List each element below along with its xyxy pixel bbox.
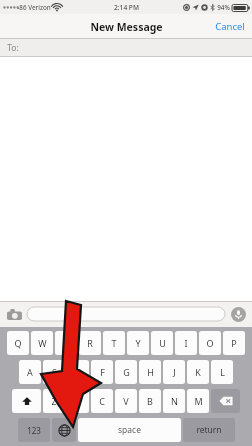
staticText: O xyxy=(206,337,214,349)
staticText: C xyxy=(99,395,105,407)
staticText: return xyxy=(196,424,222,436)
button[interactable]: Shift xyxy=(12,389,41,413)
staticText: N xyxy=(171,395,178,407)
button[interactable]: 123 xyxy=(18,418,50,442)
button[interactable]: Z xyxy=(43,389,65,413)
button[interactable]: Backspace xyxy=(211,389,240,413)
button[interactable]: W xyxy=(31,331,53,355)
button[interactable]: R xyxy=(79,331,101,355)
staticText: J xyxy=(173,366,176,378)
button[interactable]: A xyxy=(19,360,41,384)
staticText: K xyxy=(195,366,201,378)
staticText: P xyxy=(231,337,237,349)
staticText: S xyxy=(52,366,57,378)
button[interactable]: V xyxy=(115,389,137,413)
staticText: Cancel xyxy=(215,20,245,33)
button[interactable]: I xyxy=(175,331,197,355)
staticText: New Message xyxy=(90,20,163,34)
button[interactable]: Y xyxy=(127,331,149,355)
staticText: E xyxy=(63,337,69,349)
staticText: -86 Verizon xyxy=(17,3,51,12)
staticText: L xyxy=(220,366,225,378)
staticText: 94% xyxy=(217,3,230,12)
button[interactable]: D xyxy=(67,360,89,384)
button[interactable]: Q xyxy=(7,331,29,355)
staticText: T xyxy=(111,337,117,349)
button[interactable]: E xyxy=(55,331,77,355)
staticText: space xyxy=(118,424,141,436)
staticText: B xyxy=(147,395,153,407)
button[interactable]: G xyxy=(115,360,137,384)
button[interactable]: J xyxy=(163,360,185,384)
button[interactable]: Change keyboard xyxy=(52,418,76,442)
staticText: V xyxy=(123,395,129,407)
staticText: U xyxy=(159,337,166,349)
staticText: H xyxy=(147,366,154,378)
staticText: 2:14 PM xyxy=(114,3,139,12)
staticText: W xyxy=(38,337,47,349)
button[interactable]: L xyxy=(211,360,233,384)
button[interactable]: H xyxy=(139,360,161,384)
button[interactable]: To: xyxy=(0,39,252,57)
staticText: X xyxy=(75,395,81,407)
button[interactable]: K xyxy=(187,360,209,384)
button[interactable]: Camera xyxy=(5,306,23,322)
button[interactable]: S xyxy=(43,360,65,384)
staticText: G xyxy=(123,366,130,378)
staticText: A xyxy=(27,366,33,378)
button[interactable]: F xyxy=(91,360,113,384)
button[interactable]: U xyxy=(151,331,173,355)
button[interactable]: C xyxy=(91,389,113,413)
button[interactable]: X xyxy=(67,389,89,413)
button[interactable]: O xyxy=(199,331,221,355)
staticText: M xyxy=(194,395,203,407)
button[interactable]: T xyxy=(103,331,125,355)
staticText: Z xyxy=(51,395,57,407)
staticText: To: xyxy=(7,42,19,54)
button[interactable] xyxy=(27,307,225,321)
button[interactable]: B xyxy=(139,389,161,413)
staticText: D xyxy=(75,366,82,378)
button[interactable]: Cancel xyxy=(208,15,252,38)
button[interactable]: Dictate xyxy=(229,305,247,323)
staticText: R xyxy=(87,337,93,349)
button[interactable]: space xyxy=(78,418,181,442)
staticText: F xyxy=(100,366,105,378)
button[interactable]: P xyxy=(223,331,245,355)
button[interactable]: return xyxy=(183,418,235,442)
staticText: Q xyxy=(14,337,22,349)
staticText: I xyxy=(184,337,188,349)
staticText: 123 xyxy=(27,425,41,436)
staticText: Y xyxy=(135,337,141,349)
button[interactable]: M xyxy=(187,389,209,413)
button[interactable]: N xyxy=(163,389,185,413)
